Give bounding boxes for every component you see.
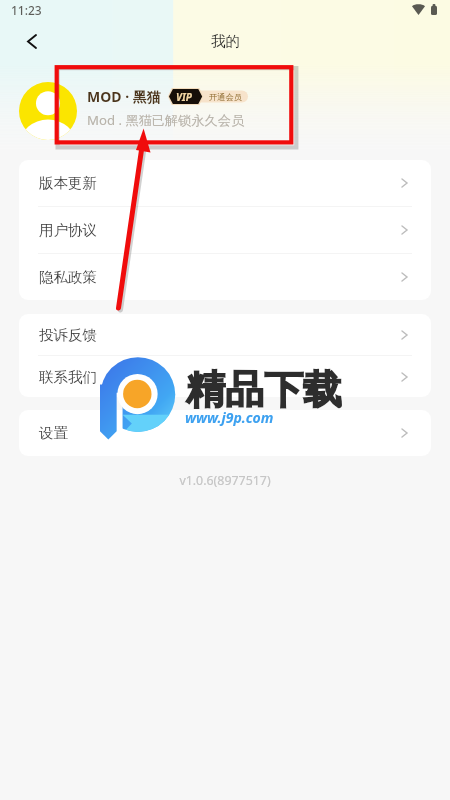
staticText: 11:23 <box>11 2 42 18</box>
button[interactable]: 用户协议 <box>19 207 431 253</box>
staticText: VIP <box>176 90 192 104</box>
staticText: 我的 <box>211 32 240 50</box>
button[interactable]: 隐私政策 <box>19 254 431 300</box>
staticText: 版本更新 <box>39 174 97 192</box>
staticText: Mod . 黑猫已解锁永久会员 <box>87 111 245 129</box>
staticText: 投诉反馈 <box>39 326 97 344</box>
staticText: 隐私政策 <box>39 268 97 286</box>
button[interactable]: 设置 <box>19 410 431 456</box>
button[interactable]: 版本更新 <box>19 160 431 206</box>
button[interactable]: VIP <box>169 89 248 104</box>
staticText: MOD · 黑猫 <box>87 87 161 106</box>
button[interactable]: 联系我们 <box>19 356 431 397</box>
staticText: 开通会员 <box>209 92 243 102</box>
staticText: 联系我们 <box>39 368 97 386</box>
staticText: 精品下载 <box>186 365 342 414</box>
button[interactable]: MOD · 黑猫 <box>0 62 450 150</box>
staticText: 设置 <box>39 424 68 442</box>
staticText: v1.0.6(8977517) <box>0 472 450 489</box>
button[interactable]: 投诉反馈 <box>19 314 431 355</box>
staticText: www.j9p.com <box>185 408 274 427</box>
button[interactable]: Back <box>10 20 54 62</box>
staticText: 用户协议 <box>39 221 97 239</box>
